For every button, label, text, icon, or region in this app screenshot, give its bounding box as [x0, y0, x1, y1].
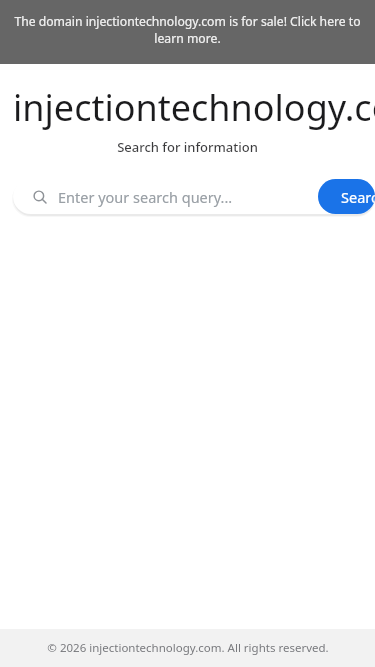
button[interactable]: The domain injectiontechnology.com is fo… — [0, 0, 375, 64]
staticText: injectiontechnology.com — [13, 83, 375, 132]
staticText: The domain injectiontechnology.com is fo… — [10, 13, 365, 47]
staticText: Enter your search query... — [58, 187, 375, 207]
staticText: Search for information — [117, 138, 258, 156]
staticText: © 2026 injectiontechnology.com. All righ… — [47, 640, 329, 656]
staticText: Search — [341, 187, 375, 207]
button[interactable]: Search — [318, 179, 375, 214]
button[interactable]: Search — [13, 179, 375, 214]
other: Search — [33, 190, 47, 204]
